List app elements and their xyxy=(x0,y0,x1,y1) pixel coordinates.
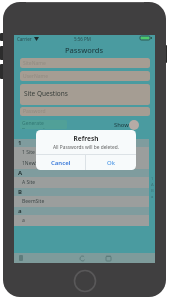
button[interactable]: Cancel xyxy=(36,155,85,170)
staticText: Generate Password xyxy=(22,120,67,129)
staticText: a xyxy=(18,207,22,215)
staticText: Password xyxy=(23,108,46,115)
staticText: A xyxy=(18,169,23,177)
staticText: Passwords xyxy=(65,45,104,54)
staticText: UserName xyxy=(23,73,49,80)
staticText: A xyxy=(151,182,154,188)
staticText: Refresh xyxy=(36,134,136,143)
staticText: Cancel xyxy=(51,159,71,167)
button[interactable]: 1 Site xyxy=(14,147,149,158)
staticText: 1 Site xyxy=(22,149,35,156)
button[interactable]: BeemSite xyxy=(14,196,149,207)
staticText: 1 xyxy=(151,176,154,182)
button[interactable]: Password xyxy=(20,107,150,116)
button[interactable]: Refresh xyxy=(75,253,89,263)
staticText: A Site xyxy=(22,179,36,186)
button[interactable]: Site Questions xyxy=(20,84,150,105)
staticText: 5:56 PM xyxy=(74,36,91,42)
button[interactable]: SiteName xyxy=(20,58,150,68)
button[interactable]: Generate Password xyxy=(20,120,67,129)
button[interactable]: Edit xyxy=(14,253,28,263)
staticText: Ok xyxy=(107,159,115,167)
staticText: BeemSite xyxy=(22,198,45,205)
staticText: 1NewSite xyxy=(22,160,44,167)
staticText: B xyxy=(151,188,154,194)
button[interactable]: Ok xyxy=(86,155,136,170)
staticText: a xyxy=(22,217,25,224)
staticText: Show xyxy=(114,121,129,129)
staticText: B xyxy=(18,188,22,196)
staticText: All Passwords will be deleted. xyxy=(36,144,136,151)
staticText: Carrier xyxy=(17,36,32,42)
staticText: SiteName xyxy=(23,60,46,67)
button[interactable]: Delete xyxy=(101,253,115,263)
button[interactable]: Show password xyxy=(129,120,139,130)
staticText: 1 xyxy=(18,139,22,147)
staticText: Site Questions xyxy=(24,89,68,98)
button[interactable]: 1NewSite xyxy=(14,158,149,169)
staticText: a xyxy=(151,194,154,200)
button[interactable]: UserName xyxy=(20,71,150,81)
button[interactable]: A Site xyxy=(14,177,149,188)
